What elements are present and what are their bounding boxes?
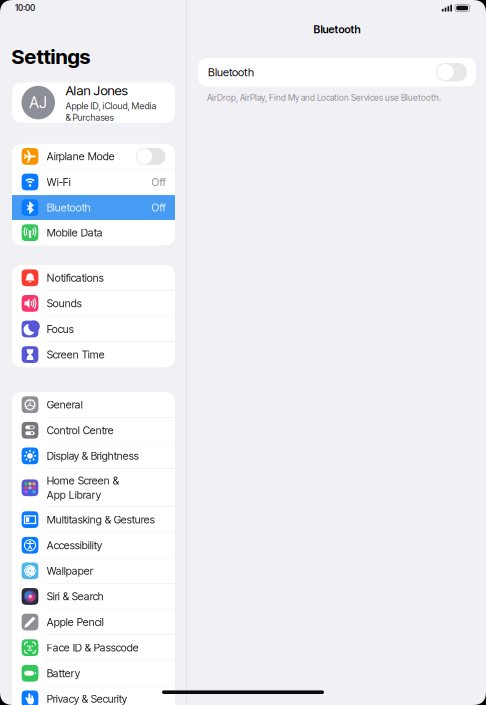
staticText: Home Screen & [47,474,119,487]
staticText: Privacy & Security [47,692,127,705]
button[interactable]: Notifications [12,265,175,290]
staticText: App Library [47,488,101,501]
staticText: Battery [47,667,80,680]
button[interactable]: General [12,392,175,417]
staticText: Notifications [47,271,104,284]
button[interactable]: Control Centre [12,418,175,443]
button[interactable]: Home Screen & [12,469,175,507]
staticText: Bluetooth [47,201,91,214]
button[interactable]: Bluetooth [12,195,175,220]
staticText: Siri & Search [47,590,104,603]
staticText: AJ [29,93,47,112]
staticText: Screen Time [47,348,105,361]
staticText: Face ID & Passcode [47,641,139,654]
staticText: Wi-Fi [47,175,71,188]
staticText: Airplane Mode [47,150,115,163]
button[interactable]: Wallpaper [12,558,175,583]
button[interactable]: Battery [12,661,175,686]
staticText: Sounds [47,297,82,310]
staticText: Multitasking & Gestures [47,513,155,526]
button[interactable]: Sounds [12,291,175,316]
button[interactable]: Siri & Search [12,584,175,609]
staticText: & Purchases [65,112,113,123]
staticText: Off [151,201,165,214]
button[interactable]: Privacy & Security [12,686,175,705]
button[interactable]: Focus [12,316,175,341]
staticText: AirDrop, AirPlay, Find My and Location S… [207,92,441,103]
staticText: Bluetooth [208,65,254,79]
staticText: Apple ID, iCloud, Media [65,100,156,111]
button[interactable]: Screen Time [12,342,175,367]
staticText: Display & Brightness [47,449,139,462]
staticText: Bluetooth [313,23,360,36]
staticText: Focus [47,322,74,335]
staticText: 10:00 [15,3,35,13]
staticText: Apple Pencil [47,616,104,628]
staticText: Settings [11,44,90,69]
staticText: Mobile Data [47,226,103,239]
button[interactable]: AJ [12,82,175,123]
button[interactable]: Display & Brightness [12,443,175,468]
staticText: Alan Jones [65,82,127,98]
staticText: Control Centre [47,424,114,437]
staticText: Wallpaper [47,564,93,577]
button[interactable]: Wi-Fi [12,169,175,194]
button[interactable]: Airplane Mode [12,144,175,169]
staticText: Off [151,175,165,188]
button[interactable]: Multitasking & Gestures [12,507,175,532]
button[interactable]: Face ID & Passcode [12,635,175,660]
button[interactable]: Apple Pencil [12,609,175,635]
staticText: Accessibility [47,539,102,552]
staticText: General [47,398,83,411]
button[interactable]: Mobile Data [12,220,175,245]
button[interactable]: Accessibility [12,533,175,558]
